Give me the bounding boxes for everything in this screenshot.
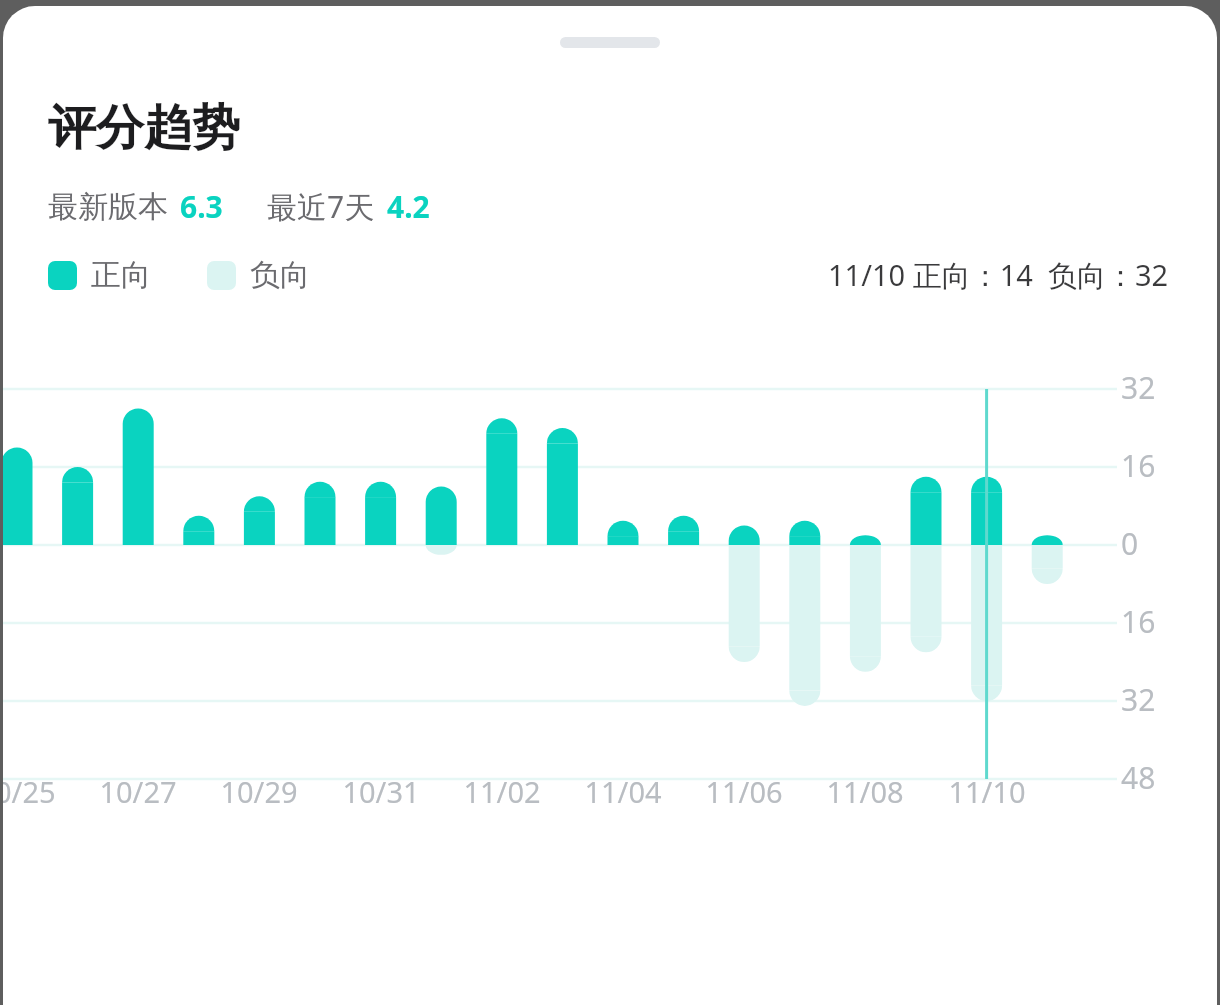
staticText: 10/25 xyxy=(3,772,69,811)
staticText: 0 xyxy=(1121,523,1139,564)
staticText: 11/04 xyxy=(571,772,675,811)
staticText: 负向 xyxy=(250,256,310,294)
staticText: 48 xyxy=(1121,757,1156,798)
button[interactable]: Drag handle xyxy=(560,37,660,48)
staticText: 10/27 xyxy=(86,772,190,811)
staticText: 11/10 xyxy=(935,772,1039,811)
staticText: 10/31 xyxy=(329,772,433,811)
button[interactable]: 正向 xyxy=(48,256,151,294)
staticText: 评分趋势 xyxy=(48,98,240,158)
staticText: 32 xyxy=(1121,679,1156,720)
staticText: 最近7天 xyxy=(267,186,375,227)
staticText: 6.3 xyxy=(180,186,223,227)
staticText: 正向 xyxy=(91,256,151,294)
staticText: 16 xyxy=(1121,445,1156,486)
staticText: 4.2 xyxy=(387,186,430,227)
staticText: 11/02 xyxy=(450,772,554,811)
button[interactable]: Rating trend chart xyxy=(3,295,1217,915)
staticText: 最新版本 xyxy=(48,188,168,226)
staticText: 10/29 xyxy=(207,772,311,811)
staticText: 11/06 xyxy=(692,772,796,811)
button[interactable]: 负向 xyxy=(207,256,310,294)
staticText: 16 xyxy=(1121,601,1156,642)
staticText: 11/10 正向：14 负向：32 xyxy=(828,255,1169,295)
staticText: 11/08 xyxy=(813,772,917,811)
staticText: 32 xyxy=(1121,367,1156,408)
